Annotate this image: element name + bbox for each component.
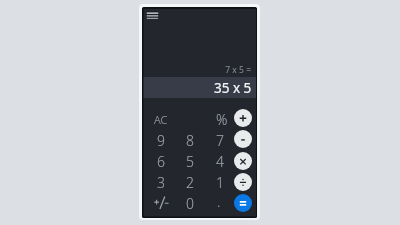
button[interactable]: 2	[176, 172, 204, 192]
button[interactable]: 7 x 5 =	[142, 63, 257, 77]
button[interactable]: Equals	[234, 194, 252, 212]
staticText: 8	[186, 131, 194, 150]
staticText: 6	[157, 152, 165, 171]
button[interactable]: 8	[176, 130, 204, 150]
button[interactable]: %	[208, 109, 236, 129]
button[interactable]: Divide	[234, 173, 252, 191]
button[interactable]: Menu	[146, 11, 159, 19]
staticText: 2	[186, 173, 194, 192]
button[interactable]: 0	[176, 193, 204, 213]
staticText: AC	[154, 112, 168, 127]
button[interactable]: Minus	[234, 130, 252, 148]
button[interactable]: 7	[206, 130, 234, 150]
button[interactable]: 1	[206, 172, 234, 192]
staticText: 4	[216, 152, 224, 171]
staticText: %	[216, 110, 228, 129]
staticText: 35 x 5	[214, 79, 252, 97]
staticText: 1	[216, 173, 224, 192]
button[interactable]: 35 x 5	[142, 77, 257, 98]
button[interactable]: Plus	[234, 109, 252, 127]
button[interactable]: 3	[147, 172, 175, 192]
staticText: 7 x 5 =	[225, 64, 251, 76]
button[interactable]: 5	[176, 151, 204, 171]
staticText: .	[217, 192, 221, 211]
staticText: 9	[157, 131, 165, 150]
staticText: 5	[186, 152, 194, 171]
button[interactable]: 4	[206, 151, 234, 171]
button[interactable]	[147, 193, 175, 213]
staticText: 3	[157, 173, 165, 192]
staticText: 0	[186, 194, 194, 213]
button[interactable]: Multiply	[234, 152, 252, 170]
button[interactable]: AC	[147, 109, 175, 129]
button[interactable]: 6	[147, 151, 175, 171]
button[interactable]: .	[205, 191, 233, 211]
staticText: 7	[216, 131, 224, 150]
button[interactable]: 9	[147, 130, 175, 150]
